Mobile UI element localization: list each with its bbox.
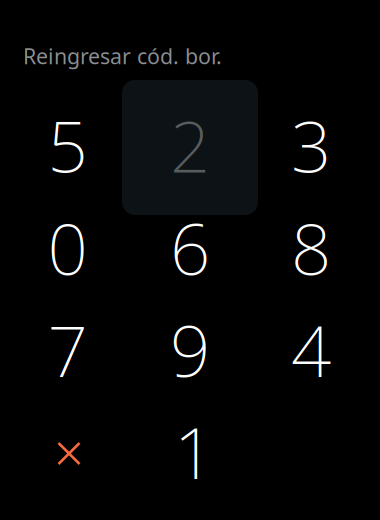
staticText: 6 bbox=[170, 201, 210, 294]
staticText: 1 bbox=[174, 405, 214, 498]
button[interactable]: 6 bbox=[129, 196, 251, 298]
button[interactable]: 1 bbox=[133, 400, 255, 502]
staticText: 4 bbox=[291, 303, 331, 396]
staticText: 9 bbox=[170, 303, 210, 396]
button[interactable]: 0 bbox=[6, 196, 128, 298]
button[interactable]: 8 bbox=[250, 196, 372, 298]
button[interactable]: 2 bbox=[129, 94, 251, 196]
button[interactable]: 9 bbox=[129, 298, 251, 400]
staticText: 0 bbox=[47, 201, 87, 294]
staticText: 7 bbox=[47, 303, 87, 396]
staticText: 5 bbox=[47, 98, 87, 192]
staticText: Reingresar cód. bor. bbox=[23, 42, 222, 70]
button[interactable]: 7 bbox=[6, 298, 128, 400]
staticText: 8 bbox=[291, 201, 331, 294]
button[interactable]: 4 bbox=[250, 298, 372, 400]
staticText: 2 bbox=[170, 98, 210, 192]
button[interactable]: 3 bbox=[250, 94, 372, 196]
button[interactable]: 5 bbox=[6, 94, 128, 196]
button[interactable]: Delete bbox=[8, 402, 130, 504]
staticText: 3 bbox=[291, 98, 331, 192]
